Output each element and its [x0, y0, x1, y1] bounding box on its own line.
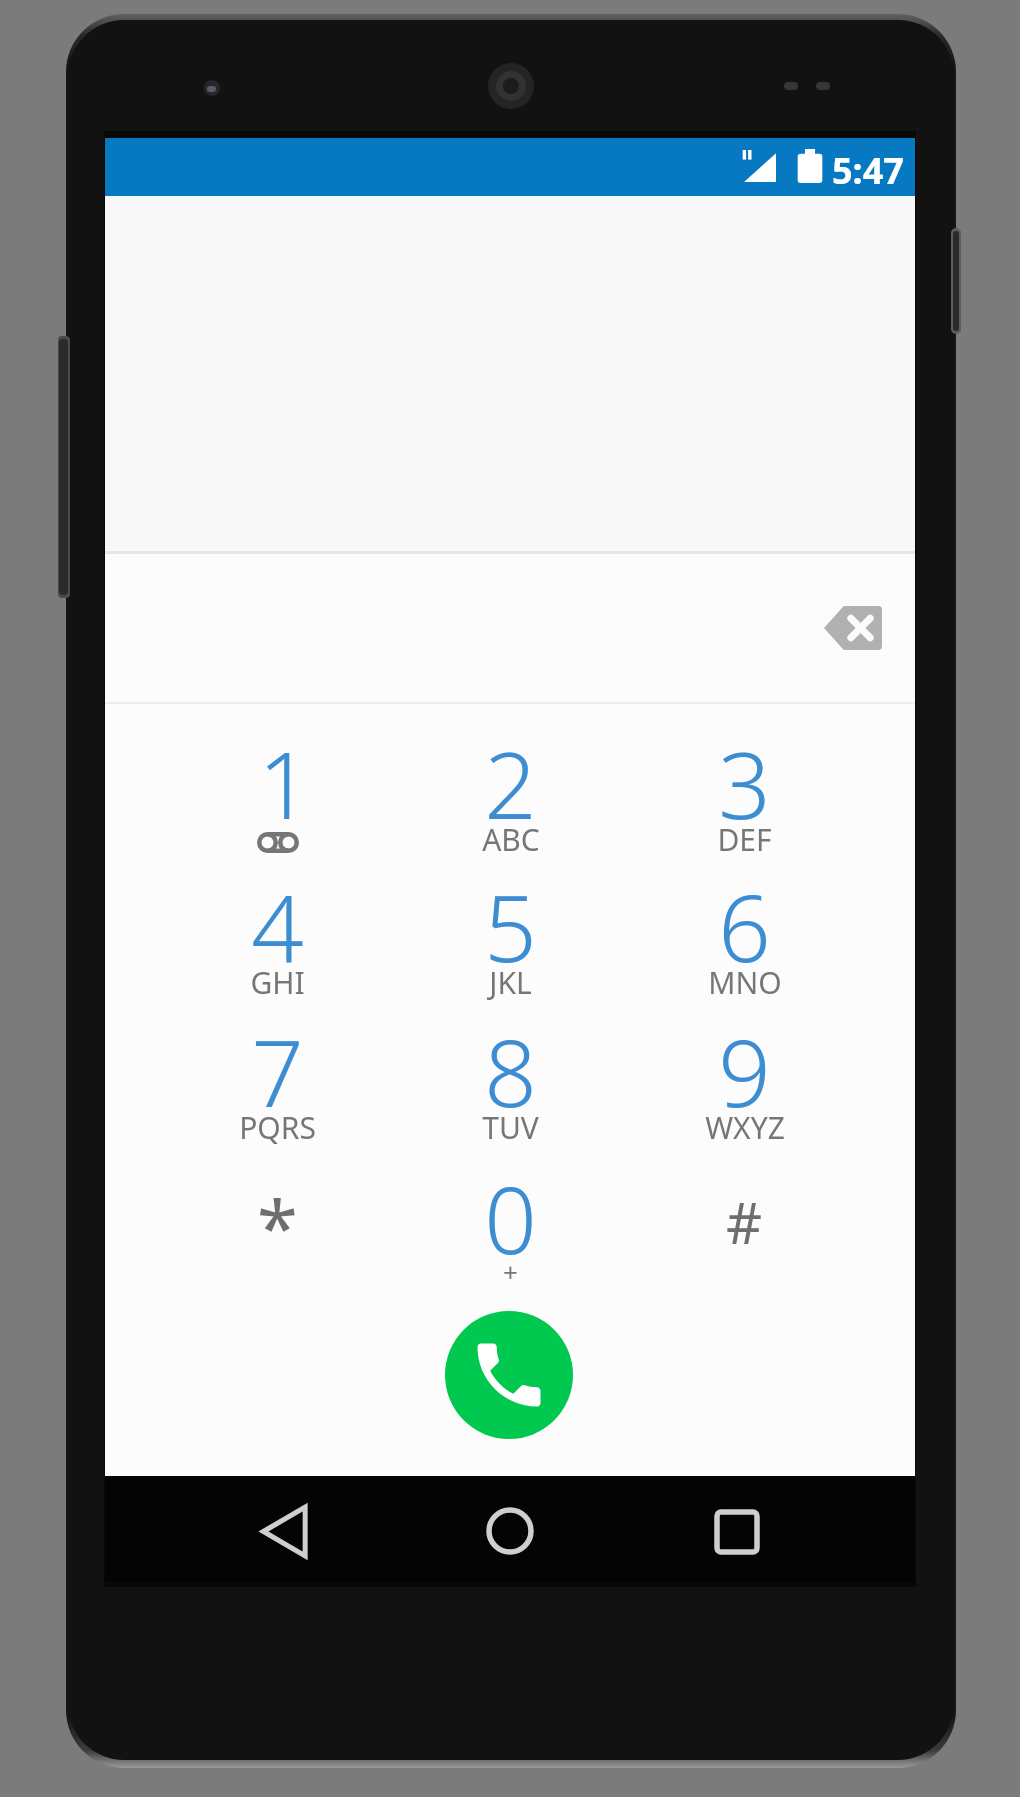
staticText: ABC [482, 819, 540, 860]
staticText: 2 [484, 721, 537, 846]
button[interactable]: Backspace [803, 578, 903, 678]
staticText: MNO [708, 962, 782, 1003]
staticText: 7 [251, 1009, 304, 1134]
staticText: 1 [258, 721, 311, 846]
staticText: + [503, 1254, 518, 1289]
staticText: JKL [489, 962, 532, 1003]
staticText: PQRS [239, 1107, 316, 1148]
staticText: 8 [484, 1009, 537, 1134]
staticText: TUV [482, 1107, 539, 1148]
button[interactable]: 0 + [394, 1148, 627, 1291]
staticText: DEF [717, 819, 772, 860]
button[interactable]: Star [161, 1148, 394, 1291]
staticText: 3 [718, 721, 771, 846]
staticText: 4 [251, 864, 304, 989]
staticText: 9 [718, 1009, 771, 1134]
button[interactable]: Pound [628, 1148, 861, 1291]
staticText: GHI [250, 962, 305, 1003]
staticText: 5 [484, 864, 537, 989]
staticText: * [257, 1176, 298, 1277]
button[interactable]: Call [445, 1311, 573, 1439]
staticText: 5:47 [832, 146, 904, 195]
button[interactable]: 4 GHI [161, 856, 394, 999]
button[interactable]: 8 TUV [394, 1001, 627, 1144]
button[interactable]: Back [245, 1491, 325, 1571]
button[interactable]: 3 DEF [628, 713, 861, 856]
button[interactable]: 1 Voicemail [161, 713, 394, 856]
staticText: 6 [718, 864, 771, 989]
button[interactable]: 5 JKL [394, 856, 627, 999]
button[interactable]: 9 WXYZ [628, 1001, 861, 1144]
staticText: # [726, 1184, 763, 1260]
staticText: 0 [484, 1156, 537, 1281]
button[interactable]: 7 PQRS [161, 1001, 394, 1144]
button[interactable]: Recents [697, 1492, 777, 1572]
button[interactable]: Home [470, 1491, 550, 1571]
button[interactable]: 2 ABC [394, 713, 627, 856]
staticText: WXYZ [705, 1107, 785, 1148]
button[interactable]: 6 MNO [628, 856, 861, 999]
